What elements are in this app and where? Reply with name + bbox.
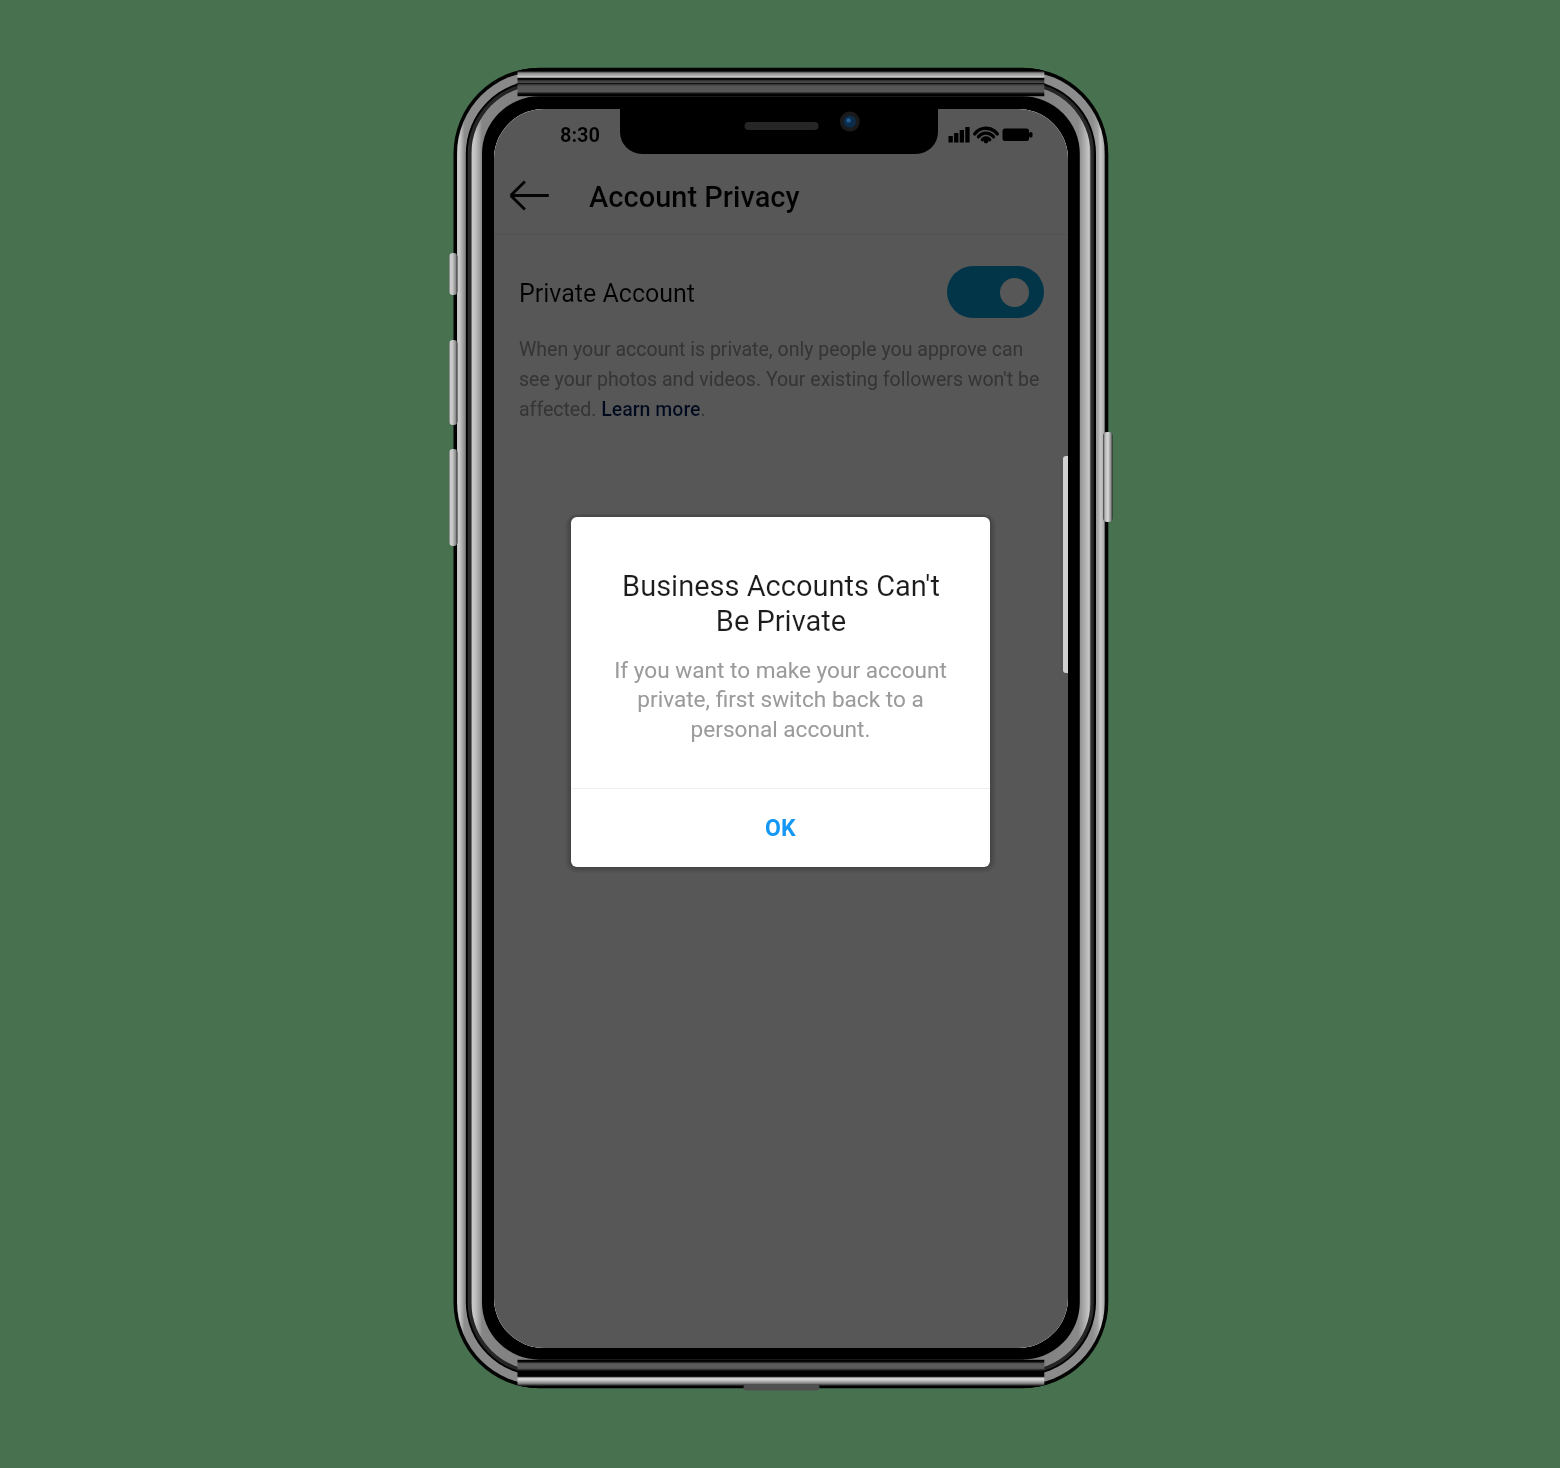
staticText: Account Privacy [589, 180, 800, 214]
button[interactable]: Back [502, 167, 558, 223]
button[interactable]: OK [571, 789, 990, 867]
staticText: 8:30 [560, 123, 601, 146]
button[interactable]: Private account switch [947, 266, 1044, 318]
staticText: Business Accounts Can't Be Private [621, 569, 941, 638]
staticText: If you want to make your account private… [608, 657, 953, 743]
staticText: When your account is private, only peopl… [519, 338, 1050, 421]
button[interactable]: Private Account [494, 235, 1068, 349]
staticText: OK [765, 815, 796, 842]
staticText: Private Account [519, 279, 695, 308]
